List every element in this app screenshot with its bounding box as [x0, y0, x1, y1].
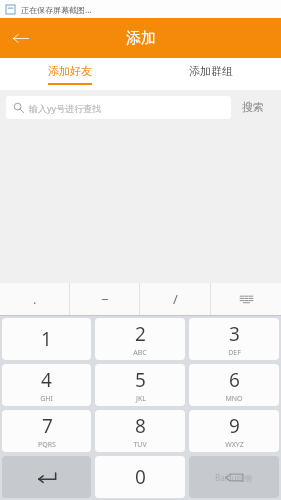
- button[interactable]: 0: [95, 456, 185, 498]
- button[interactable]: 添加群组: [140, 58, 281, 90]
- staticText: TUV: [133, 440, 147, 450]
- staticText: 3: [229, 321, 240, 347]
- staticText: 1: [41, 326, 52, 352]
- staticText: PQRS: [38, 440, 56, 450]
- button[interactable]: 输入yy号进行查找: [6, 96, 231, 119]
- button[interactable]: 7: [2, 410, 91, 452]
- button[interactable]: 4: [2, 364, 91, 406]
- staticText: .: [33, 290, 37, 308]
- staticText: WXYZ: [225, 440, 244, 450]
- button[interactable]: 5: [95, 364, 185, 406]
- button[interactable]: 3: [189, 318, 279, 360]
- button[interactable]: Enter: [2, 456, 91, 498]
- staticText: 搜索: [242, 100, 264, 114]
- staticText: 添加: [126, 29, 156, 48]
- button[interactable]: 搜索: [231, 90, 275, 124]
- button[interactable]: 6: [189, 364, 279, 406]
- staticText: 添加好友: [48, 64, 92, 78]
- staticText: −: [101, 290, 109, 308]
- staticText: 添加群组: [189, 64, 233, 78]
- staticText: 7: [42, 413, 53, 439]
- staticText: 输入yy号进行查找: [29, 102, 102, 114]
- button[interactable]: Back: [0, 18, 40, 58]
- staticText: 正在保存屏幕截图...: [21, 4, 92, 15]
- staticText: 4: [41, 367, 52, 393]
- staticText: 0: [135, 464, 146, 490]
- staticText: 6: [229, 367, 240, 393]
- staticText: GHI: [40, 394, 53, 404]
- button[interactable]: 1: [2, 318, 91, 360]
- staticText: 9: [229, 413, 240, 439]
- staticText: ABC: [133, 348, 147, 358]
- button[interactable]: −: [70, 283, 139, 315]
- button[interactable]: Switch keyboard: [211, 283, 281, 315]
- staticText: 5: [135, 367, 146, 393]
- button[interactable]: Backspace: [189, 456, 279, 498]
- staticText: Baidu经验: [215, 472, 253, 483]
- staticText: 2: [135, 321, 146, 347]
- button[interactable]: /: [140, 283, 210, 315]
- button[interactable]: 9: [189, 410, 279, 452]
- staticText: JKL: [136, 394, 146, 404]
- staticText: 8: [135, 413, 146, 439]
- staticText: MNO: [225, 394, 243, 404]
- button[interactable]: 添加好友: [0, 58, 140, 90]
- button[interactable]: 8: [95, 410, 185, 452]
- staticText: /: [173, 290, 178, 308]
- button[interactable]: .: [0, 283, 69, 315]
- staticText: DEF: [228, 348, 241, 358]
- button[interactable]: 2: [95, 318, 185, 360]
